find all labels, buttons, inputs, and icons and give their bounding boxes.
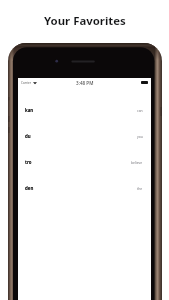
staticText: kan: [25, 107, 34, 113]
staticText: du: [25, 133, 31, 139]
staticText: kan: [25, 107, 34, 113]
button[interactable]: kan: [18, 97, 151, 123]
staticText: tro: [25, 159, 32, 165]
button[interactable]: den: [18, 175, 151, 201]
staticText: du: [25, 133, 31, 139]
staticText: can: [137, 108, 143, 113]
button[interactable]: tro: [18, 149, 151, 175]
staticText: Carrier: [21, 81, 32, 85]
button[interactable]: Your Favorites: [0, 0, 169, 40]
staticText: you: [137, 134, 143, 139]
staticText: den: [25, 185, 34, 191]
other: Battery full: [141, 81, 148, 84]
staticText: the: [137, 186, 143, 191]
staticText: 3:48 PM: [76, 80, 94, 86]
staticText: tro: [25, 159, 32, 165]
staticText: den: [25, 185, 34, 191]
button[interactable]: du: [18, 123, 151, 149]
staticText: Your Favorites: [44, 13, 126, 29]
staticText: believe: [131, 160, 143, 165]
other: Wi-Fi: [33, 81, 37, 85]
